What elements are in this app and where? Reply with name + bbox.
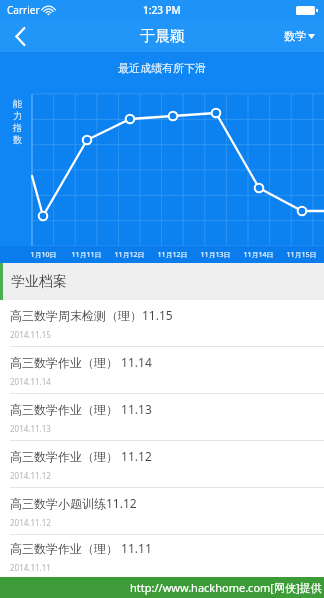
staticText: 高三数学小题训练11.12: [10, 495, 137, 511]
staticText: 高三数学周末检测（理）11.15: [10, 307, 173, 323]
button[interactable]: Back: [0, 20, 40, 52]
staticText: 11月15日: [286, 250, 317, 260]
staticText: Carrier: [7, 3, 40, 17]
staticText: 指: [13, 122, 22, 134]
button[interactable]: 高三数学作业（理） 11.14: [0, 347, 324, 393]
staticText: 数学: [284, 29, 306, 43]
button[interactable]: 高三数学作业（理） 11.11: [0, 535, 324, 577]
staticText: 11月14日: [243, 250, 274, 260]
staticText: 力: [13, 110, 22, 122]
staticText: 2014.11.12: [10, 470, 51, 481]
staticText: 于晨颖: [140, 27, 185, 46]
button[interactable]: 高三数学作业（理） 11.12: [0, 441, 324, 487]
staticText: 2014.11.15: [10, 329, 51, 340]
staticText: 1月10日: [30, 250, 57, 260]
staticText: 学业档案: [11, 273, 67, 291]
button[interactable]: 数学: [275, 20, 324, 52]
staticText: 最近成绩有所下滑: [118, 61, 206, 75]
staticText: 2014.11.13: [10, 423, 51, 434]
staticText: 11月11日: [71, 250, 102, 260]
button[interactable]: 高三数学作业（理） 11.13: [0, 394, 324, 440]
staticText: http://www.hackhome.com[网侠]提供: [130, 580, 322, 595]
staticText: 2014.11.12: [10, 517, 51, 528]
staticText: 高三数学作业（理） 11.11: [10, 540, 152, 556]
staticText: 11月12日: [114, 250, 145, 260]
staticText: 11月12日: [157, 250, 188, 260]
staticText: 能: [13, 98, 22, 110]
button[interactable]: 高三数学小题训练11.12: [0, 488, 324, 534]
staticText: 2014.11.14: [10, 376, 51, 387]
staticText: 高三数学作业（理） 11.12: [10, 448, 152, 464]
staticText: 高三数学作业（理） 11.14: [10, 354, 152, 370]
staticText: 高三数学作业（理） 11.13: [10, 401, 152, 417]
staticText: 2014.11.11: [10, 562, 51, 573]
staticText: 11月13日: [200, 250, 231, 260]
staticText: 数: [13, 134, 22, 146]
staticText: 1:23 PM: [143, 3, 181, 17]
button[interactable]: 高三数学周末检测（理）11.15: [0, 300, 324, 346]
